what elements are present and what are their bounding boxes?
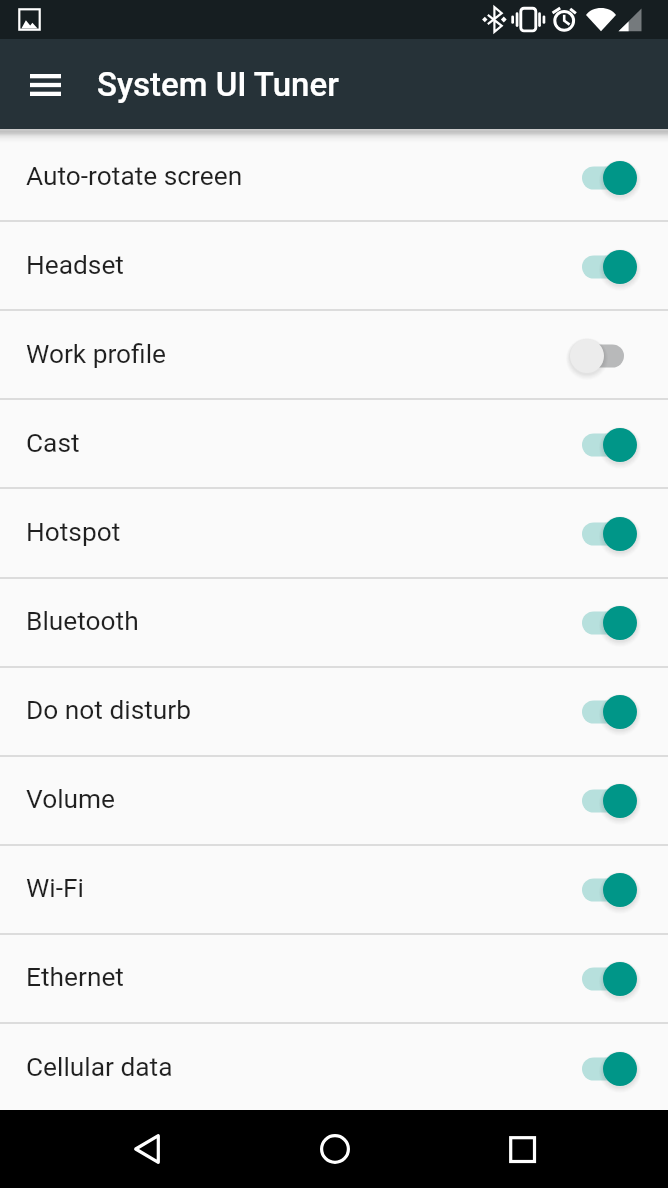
staticText: Hotspot bbox=[26, 517, 121, 548]
staticText: System UI Tuner bbox=[97, 65, 339, 104]
button[interactable]: Hotspot bbox=[0, 489, 668, 578]
button[interactable]: Recent apps bbox=[486, 1113, 558, 1185]
button[interactable]: Auto-rotate screen, on bbox=[570, 157, 637, 199]
button[interactable]: Cellular data, on bbox=[570, 1048, 637, 1090]
button[interactable]: Ethernet, on bbox=[570, 958, 637, 1000]
button[interactable]: Back bbox=[111, 1113, 183, 1185]
button[interactable]: Wi-Fi bbox=[0, 845, 668, 934]
button[interactable]: Ethernet bbox=[0, 934, 668, 1023]
staticText: Ethernet bbox=[26, 962, 124, 993]
staticText: Cellular data bbox=[26, 1052, 173, 1083]
staticText: Work profile bbox=[26, 339, 167, 370]
button[interactable]: Hotspot, on bbox=[570, 513, 637, 555]
staticText: Bluetooth bbox=[26, 606, 139, 637]
button[interactable]: Cast bbox=[0, 400, 668, 489]
staticText: Cast bbox=[26, 428, 80, 459]
button[interactable]: Work profile, off bbox=[570, 335, 637, 377]
staticText: Do not disturb bbox=[26, 695, 191, 726]
button[interactable]: Volume, on bbox=[570, 780, 637, 822]
button[interactable]: Work profile bbox=[0, 311, 668, 400]
button[interactable]: Cast, on bbox=[570, 424, 637, 466]
staticText: Wi-Fi bbox=[26, 873, 84, 904]
button[interactable]: Auto-rotate screen bbox=[0, 133, 668, 222]
button[interactable]: Headset, on bbox=[570, 246, 637, 288]
button[interactable]: Open navigation menu bbox=[14, 53, 76, 115]
button[interactable]: Volume bbox=[0, 756, 668, 845]
button[interactable]: Wi-Fi, on bbox=[570, 869, 637, 911]
staticText: Headset bbox=[26, 250, 124, 281]
button[interactable]: Do not disturb, on bbox=[570, 691, 637, 733]
staticText: Volume bbox=[26, 784, 116, 815]
button[interactable]: Headset bbox=[0, 222, 668, 311]
button[interactable]: Bluetooth bbox=[0, 578, 668, 667]
button[interactable]: Bluetooth, on bbox=[570, 602, 637, 644]
staticText: Auto-rotate screen bbox=[26, 161, 243, 192]
button[interactable]: Do not disturb bbox=[0, 667, 668, 756]
button[interactable]: Cellular data bbox=[0, 1024, 668, 1113]
button[interactable]: Home bbox=[299, 1113, 371, 1185]
